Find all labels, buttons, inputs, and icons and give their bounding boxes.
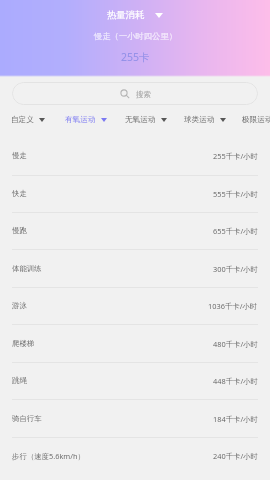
- button[interactable]: 球类运动: [184, 111, 226, 129]
- staticText: 体能训练: [12, 264, 42, 273]
- button[interactable]: 有氧运动: [65, 111, 107, 129]
- button[interactable]: 自定义: [11, 111, 45, 129]
- button[interactable]: 慢走: [0, 137, 270, 174]
- staticText: 无氧运动: [125, 115, 156, 125]
- staticText: 448千卡/小时: [213, 376, 258, 386]
- staticText: 655千卡/小时: [213, 226, 258, 236]
- staticText: 慢跑: [12, 226, 27, 235]
- staticText: 184千卡/小时: [213, 414, 258, 424]
- staticText: 555千卡/小时: [213, 189, 258, 199]
- button[interactable]: 慢跑: [0, 212, 270, 249]
- staticText: 240千卡/小时: [213, 451, 258, 461]
- button[interactable]: 步行（速度5.6km/h）: [0, 437, 270, 474]
- staticText: 骑自行车: [12, 414, 42, 423]
- staticText: 有氧运动: [65, 115, 96, 125]
- button[interactable]: 搜索: [12, 82, 258, 105]
- staticText: 255卡: [121, 50, 150, 64]
- staticText: 1036千卡/小时: [208, 301, 258, 311]
- staticText: 慢走: [12, 151, 27, 160]
- staticText: 球类运动: [184, 115, 215, 125]
- staticText: 300千卡/小时: [213, 264, 258, 274]
- staticText: 480千卡/小时: [213, 339, 258, 349]
- button[interactable]: 快走: [0, 175, 270, 212]
- button[interactable]: 热量消耗 选择类别: [103, 8, 167, 22]
- button[interactable]: 体能训练: [0, 250, 270, 287]
- staticText: 热量消耗: [107, 9, 145, 21]
- button[interactable]: 无氧运动: [125, 111, 167, 129]
- staticText: 步行（速度5.6km/h）: [12, 451, 85, 461]
- button[interactable]: 跳绳: [0, 362, 270, 399]
- button[interactable]: 极限运动: [242, 111, 270, 129]
- staticText: 极限运动: [242, 115, 270, 125]
- staticText: 搜索: [136, 90, 151, 99]
- staticText: 快走: [12, 189, 27, 198]
- staticText: 跳绳: [12, 376, 27, 385]
- button[interactable]: 爬楼梯: [0, 325, 270, 362]
- staticText: 自定义: [11, 115, 34, 125]
- button[interactable]: 游泳: [0, 287, 270, 324]
- staticText: 255千卡/小时: [213, 151, 258, 161]
- staticText: 游泳: [12, 301, 27, 310]
- button[interactable]: 骑自行车: [0, 400, 270, 437]
- staticText: 慢走（一小时四公里）: [94, 31, 177, 41]
- staticText: 爬楼梯: [12, 339, 35, 348]
